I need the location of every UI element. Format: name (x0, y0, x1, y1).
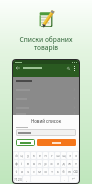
staticText: щ (62, 153, 66, 158)
staticText: х (75, 153, 77, 158)
button[interactable]: з (67, 152, 72, 159)
staticText: з (69, 153, 71, 158)
staticText: с (33, 169, 35, 174)
staticText: ь (57, 169, 59, 174)
button[interactable]: щ (61, 152, 66, 159)
button[interactable]: ?123 (14, 176, 22, 182)
staticText: ш (56, 153, 60, 158)
button[interactable] (16, 129, 76, 136)
button[interactable]: Більше опцій (71, 65, 77, 71)
button[interactable]: р (43, 160, 48, 167)
staticText: , (26, 177, 27, 182)
staticText: ⌫ (73, 170, 78, 174)
staticText: т (51, 169, 53, 174)
staticText: ?123 (14, 177, 22, 182)
button[interactable] (37, 139, 76, 146)
staticText: е (39, 153, 41, 158)
staticText: д (62, 161, 65, 166)
staticText: . (64, 177, 65, 182)
staticText: в (27, 161, 29, 166)
button[interactable]: е (37, 152, 42, 159)
staticText: ц (20, 153, 23, 158)
button[interactable]: г (49, 152, 54, 159)
staticText: ↵ (72, 177, 75, 181)
staticText: ч (27, 169, 29, 174)
staticText: й (15, 153, 18, 158)
button[interactable]: ч (25, 168, 30, 175)
button[interactable]: є (73, 160, 78, 167)
button[interactable]: а (31, 160, 36, 167)
button[interactable]: Пошук (65, 65, 71, 71)
staticText: Списки обраних товарів (0, 35, 92, 52)
button[interactable]: ю (67, 168, 72, 175)
staticText: ф (15, 161, 18, 166)
button[interactable]: ц (19, 152, 24, 159)
button[interactable]: и (43, 168, 48, 175)
button[interactable]: у (25, 152, 30, 159)
staticText: а (33, 161, 35, 166)
staticText: у (27, 153, 29, 158)
button[interactable]: л (55, 160, 60, 167)
button[interactable]: к (31, 152, 36, 159)
button[interactable]: о (49, 160, 54, 167)
staticText: к (33, 153, 35, 158)
staticText: н (44, 153, 47, 158)
staticText: р (44, 161, 47, 166)
button[interactable] (16, 139, 35, 146)
staticText: б (62, 169, 65, 174)
button[interactable]: . (61, 176, 68, 182)
button[interactable]: н (43, 152, 48, 159)
button[interactable]: б (61, 168, 66, 175)
button[interactable]: і (19, 160, 24, 167)
button[interactable]: ь (55, 168, 60, 175)
button[interactable]: х (73, 152, 78, 159)
button[interactable]: т (49, 168, 54, 175)
staticText: є (75, 161, 77, 166)
button[interactable]: ж (67, 160, 72, 167)
button[interactable]: й (14, 152, 18, 159)
staticText: ю (68, 169, 71, 174)
staticText: о (50, 161, 53, 166)
button[interactable]: ↵ (69, 176, 78, 182)
button[interactable]: , (23, 176, 30, 182)
staticText: я (21, 169, 23, 174)
button[interactable]: Піктограма застосунку (36, 9, 56, 29)
button[interactable]: в (25, 160, 30, 167)
button[interactable]: ⇧ (14, 168, 18, 175)
button[interactable]: м (37, 168, 42, 175)
button[interactable]: с (31, 168, 36, 175)
staticText: ⇧ (15, 170, 18, 174)
button[interactable]: я (19, 168, 24, 175)
staticText: ж (68, 161, 71, 166)
staticText: л (57, 161, 59, 166)
button[interactable]: ф (14, 160, 18, 167)
button[interactable]: ⌫ (73, 168, 78, 175)
staticText: Новий список (16, 118, 76, 124)
staticText: і (21, 161, 22, 166)
button[interactable]: ш (55, 152, 60, 159)
staticText: и (44, 169, 47, 174)
staticText: п (38, 161, 41, 166)
staticText: г (51, 153, 53, 158)
button[interactable]: Назад (15, 65, 21, 71)
button[interactable]: д (61, 160, 66, 167)
button[interactable]: п (37, 160, 42, 167)
staticText: м (38, 169, 41, 174)
button[interactable] (13, 112, 79, 115)
